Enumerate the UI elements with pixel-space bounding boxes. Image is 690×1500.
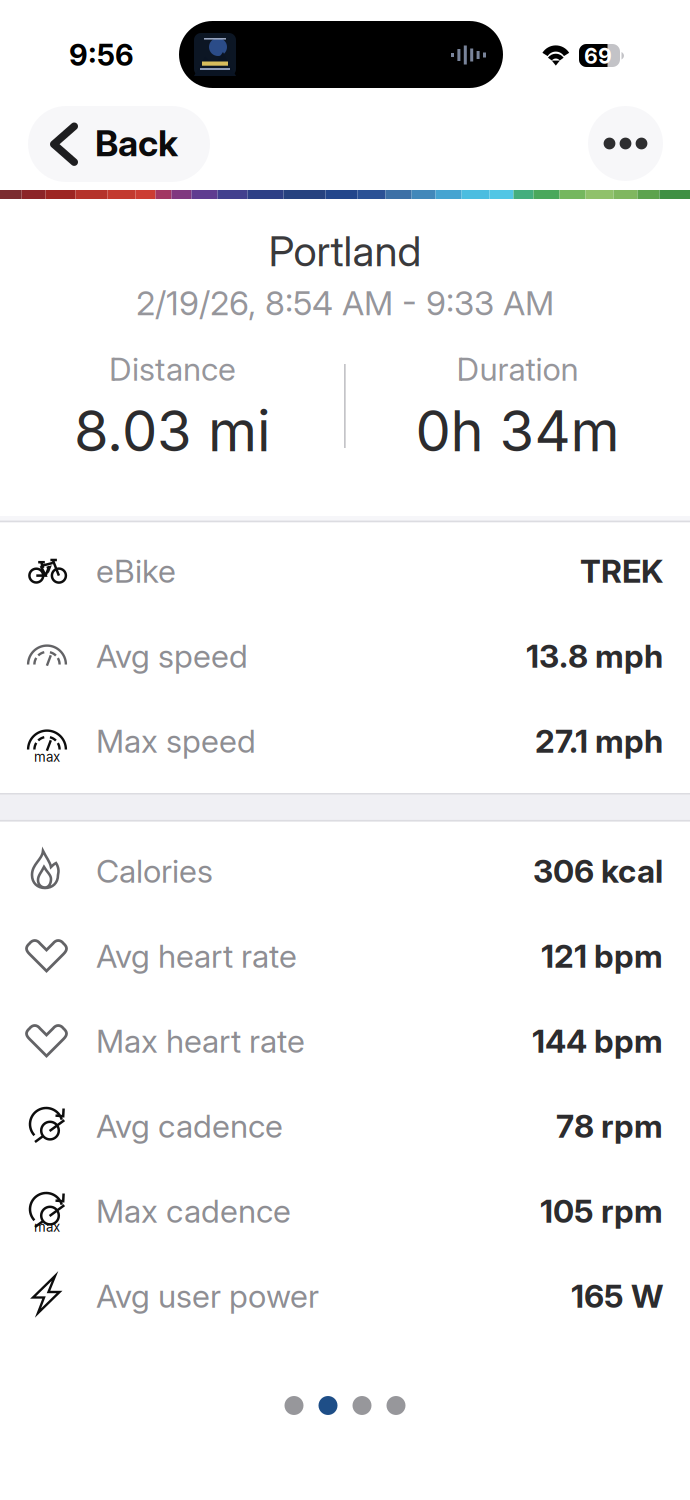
staticText: 69: [584, 43, 612, 69]
staticText: Calories: [96, 852, 213, 890]
button[interactable]: max: [0, 1168, 690, 1253]
staticText: 121 bpm: [541, 937, 663, 975]
staticText: 105 rpm: [540, 1192, 663, 1230]
button[interactable]: Avg speed: [0, 613, 690, 698]
staticText: eBike: [96, 552, 176, 590]
staticText: 9:56: [69, 37, 134, 73]
button[interactable]: eBike: [0, 528, 690, 613]
staticText: Portland: [268, 226, 421, 276]
button[interactable]: Back: [28, 106, 210, 182]
staticText: 144 bpm: [532, 1022, 663, 1060]
button[interactable]: max: [0, 698, 690, 783]
staticText: 8.03 mi: [74, 397, 271, 465]
staticText: TREK: [580, 552, 663, 590]
staticText: max: [34, 1219, 60, 1235]
staticText: 13.8 mph: [526, 637, 663, 675]
staticText: Avg cadence: [96, 1107, 283, 1145]
button[interactable]: Avg heart rate: [0, 913, 690, 998]
button[interactable]: Avg user power: [0, 1253, 690, 1338]
staticText: Avg user power: [96, 1277, 319, 1315]
staticText: Distance: [109, 350, 236, 388]
staticText: 165 W: [571, 1277, 663, 1315]
button[interactable]: Max heart rate: [0, 998, 690, 1083]
staticText: Back: [95, 121, 178, 165]
staticText: Max cadence: [96, 1192, 291, 1230]
staticText: Max speed: [96, 722, 256, 760]
staticText: Duration: [456, 350, 578, 388]
button[interactable]: Calories: [0, 828, 690, 913]
button[interactable]: Avg cadence: [0, 1083, 690, 1168]
button[interactable]: More options: [588, 106, 663, 181]
staticText: 27.1 mph: [535, 722, 663, 760]
staticText: 78 rpm: [556, 1107, 663, 1145]
staticText: Avg speed: [96, 637, 248, 675]
staticText: Max heart rate: [96, 1022, 305, 1060]
staticText: 0h 34m: [415, 397, 619, 465]
staticText: max: [34, 749, 60, 765]
staticText: Avg heart rate: [96, 937, 297, 975]
staticText: 2/19/26, 8:54 AM - 9:33 AM: [136, 283, 554, 323]
staticText: 306 kcal: [533, 852, 663, 890]
